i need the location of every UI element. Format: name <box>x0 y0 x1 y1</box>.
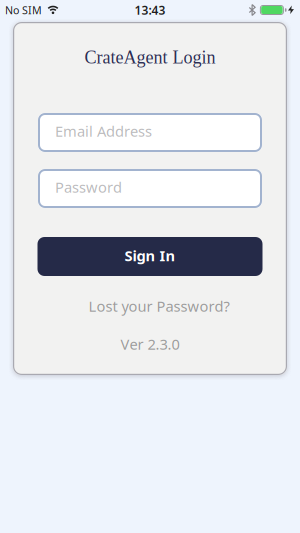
staticText: Lost your Password? <box>88 296 229 316</box>
staticText: No SIM <box>5 3 42 17</box>
staticText: Sign In <box>124 246 175 265</box>
staticText: Password <box>55 177 122 197</box>
staticText: Email Address <box>55 121 152 141</box>
button[interactable]: Sign In <box>37 237 262 276</box>
staticText: CrateAgent Login <box>84 47 215 68</box>
staticText: 13:43 <box>134 2 165 18</box>
button[interactable]: Email Address <box>38 113 262 152</box>
button[interactable]: Password <box>38 169 262 208</box>
staticText: Ver 2.3.0 <box>120 334 179 354</box>
button[interactable]: Lost your Password? <box>88 296 229 316</box>
